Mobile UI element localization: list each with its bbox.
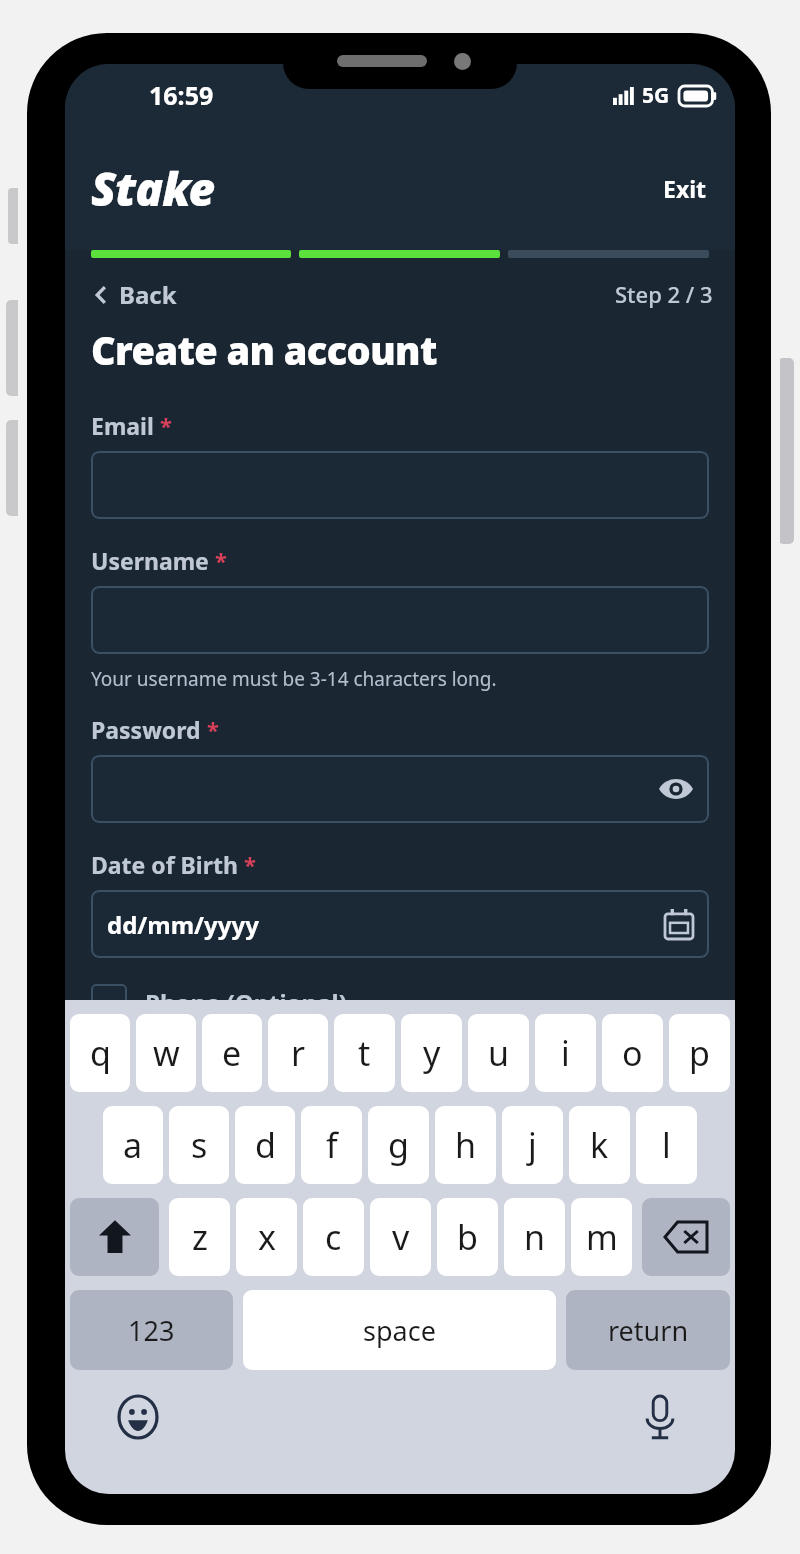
button[interactable]: x — [236, 1198, 297, 1276]
button[interactable]: g — [368, 1106, 429, 1184]
staticText: Password — [91, 714, 201, 745]
button[interactable]: Dictate — [637, 1390, 683, 1446]
staticText: p — [689, 1030, 710, 1076]
button[interactable]: Show password — [659, 778, 693, 800]
button[interactable]: q — [70, 1014, 130, 1092]
staticText: h — [455, 1122, 477, 1168]
button[interactable]: r — [268, 1014, 328, 1092]
staticText: g — [388, 1122, 409, 1168]
staticText: Your username must be 3-14 characters lo… — [91, 666, 497, 692]
button[interactable]: space — [243, 1290, 556, 1370]
button[interactable]: Back — [87, 274, 183, 315]
staticText: o — [622, 1030, 643, 1076]
staticText: 16:59 — [149, 78, 214, 112]
staticText: Stake — [91, 157, 215, 220]
button[interactable]: k — [569, 1106, 630, 1184]
staticText: Email — [91, 410, 154, 441]
staticText: i — [561, 1030, 570, 1076]
button[interactable]: j — [502, 1106, 563, 1184]
staticText: v — [392, 1214, 410, 1260]
button[interactable]: o — [602, 1014, 663, 1092]
button[interactable]: i — [535, 1014, 596, 1092]
button[interactable]: s — [169, 1106, 229, 1184]
button[interactable]: l — [636, 1106, 697, 1184]
staticText: Date of Birth — [91, 849, 238, 880]
button[interactable]: t — [334, 1014, 395, 1092]
staticText: d — [255, 1122, 276, 1168]
button[interactable]: w — [136, 1014, 196, 1092]
staticText: j — [528, 1122, 537, 1168]
staticText: * — [215, 545, 227, 575]
staticText: q — [90, 1030, 111, 1076]
staticText: k — [590, 1122, 609, 1168]
staticText: Username — [91, 545, 209, 576]
staticText: z — [192, 1214, 208, 1260]
button[interactable]: y — [401, 1014, 462, 1092]
button[interactable]: Backspace — [642, 1198, 730, 1276]
button[interactable]: return — [566, 1290, 730, 1370]
staticText: Exit — [663, 173, 707, 204]
button[interactable]: z — [169, 1198, 230, 1276]
staticText: dd/mm/yyyy — [107, 908, 259, 941]
button[interactable]: d — [235, 1106, 295, 1184]
staticText: Back — [119, 278, 177, 311]
staticText: m — [586, 1214, 618, 1260]
staticText: Create an account — [91, 324, 437, 376]
staticText: Phone (Optional) — [145, 986, 347, 1019]
staticText: * — [160, 410, 172, 440]
button[interactable] — [91, 586, 709, 654]
button[interactable] — [91, 451, 709, 519]
button[interactable]: p — [669, 1014, 730, 1092]
button[interactable]: 123 — [70, 1290, 233, 1370]
staticText: 5G — [642, 81, 670, 110]
button[interactable]: f — [301, 1106, 362, 1184]
button[interactable]: Show password — [91, 755, 709, 823]
staticText: t — [358, 1030, 371, 1076]
button[interactable]: Shift — [70, 1198, 159, 1276]
button[interactable]: v — [370, 1198, 431, 1276]
staticText: Step 2 / 3 — [615, 279, 713, 309]
staticText: c — [325, 1214, 342, 1260]
staticText: n — [524, 1214, 546, 1260]
button[interactable]: dd/mm/yyyy — [91, 890, 709, 958]
button[interactable]: Emoji — [113, 1390, 163, 1444]
button[interactable]: n — [504, 1198, 565, 1276]
button[interactable]: a — [103, 1106, 163, 1184]
staticText: e — [222, 1030, 242, 1076]
staticText: y — [423, 1030, 441, 1076]
staticText: space — [363, 1312, 436, 1349]
staticText: f — [326, 1122, 338, 1168]
staticText: a — [123, 1122, 143, 1168]
staticText: l — [662, 1122, 671, 1168]
button[interactable]: b — [437, 1198, 498, 1276]
button[interactable]: Exit — [649, 163, 721, 214]
staticText: 123 — [128, 1312, 175, 1349]
button[interactable]: h — [435, 1106, 496, 1184]
button[interactable]: u — [468, 1014, 529, 1092]
staticText: w — [153, 1030, 180, 1076]
staticText: s — [191, 1122, 208, 1168]
staticText: r — [291, 1030, 306, 1076]
button[interactable]: e — [202, 1014, 262, 1092]
button[interactable]: m — [571, 1198, 632, 1276]
staticText: b — [457, 1214, 478, 1260]
button[interactable]: c — [303, 1198, 364, 1276]
staticText: * — [244, 849, 256, 879]
staticText: u — [488, 1030, 510, 1076]
staticText: * — [207, 714, 219, 744]
button[interactable]: Pick date — [665, 909, 693, 939]
staticText: x — [258, 1214, 276, 1260]
button[interactable]: Phone (Optional) — [91, 984, 347, 1020]
staticText: return — [608, 1312, 689, 1349]
